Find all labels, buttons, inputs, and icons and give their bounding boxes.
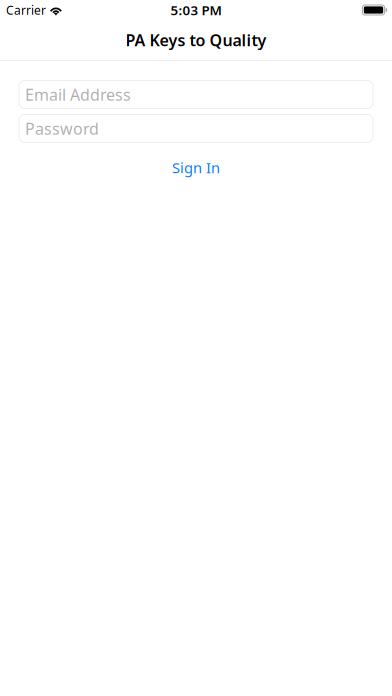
staticText: 5:03 PM: [170, 1, 221, 19]
staticText: Password: [25, 118, 99, 139]
staticText: Sign In: [172, 158, 220, 177]
staticText: Email Address: [25, 84, 131, 105]
button[interactable]: Password: [19, 114, 373, 142]
staticText: Carrier: [6, 2, 46, 18]
button[interactable]: Sign In: [19, 156, 373, 178]
button[interactable]: Email Address: [19, 80, 373, 108]
staticText: PA Keys to Quality: [125, 29, 266, 51]
